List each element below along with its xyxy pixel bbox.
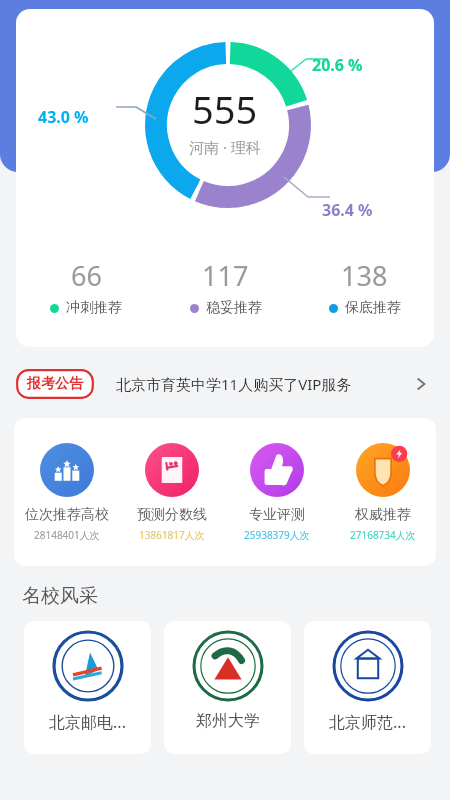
- staticText: 预测分数线: [137, 506, 207, 524]
- staticText: 13861817人次: [139, 528, 205, 542]
- staticText: 138: [341, 257, 388, 294]
- staticText: 北京邮电...: [49, 711, 126, 733]
- staticText: 名校风采: [22, 584, 98, 608]
- button[interactable]: 117: [156, 257, 295, 317]
- staticText: 117: [202, 257, 249, 294]
- staticText: 27168734人次: [350, 528, 416, 542]
- staticText: 河南 · 理科: [189, 137, 261, 157]
- staticText: 保底推荐: [345, 299, 401, 317]
- staticText: 北京师范...: [329, 711, 406, 733]
- staticText: 北京市育英中学11人购买了VIP服务: [116, 374, 408, 394]
- button[interactable]: 报考公告: [16, 362, 434, 406]
- staticText: 冲刺推荐: [66, 299, 122, 317]
- button[interactable]: 预测分数线: [119, 443, 224, 542]
- staticText: 权威推荐: [355, 506, 411, 524]
- staticText: 555: [192, 83, 258, 135]
- button[interactable]: 北京邮电...: [24, 621, 151, 754]
- staticText: 25938379人次: [244, 528, 310, 542]
- staticText: 专业评测: [249, 506, 305, 524]
- staticText: 郑州大学: [196, 711, 260, 731]
- button[interactable]: 郑州大学: [164, 621, 291, 754]
- staticText: 28148401人次: [34, 528, 100, 542]
- staticText: 报考公告: [27, 375, 83, 393]
- button[interactable]: 北京师范...: [304, 621, 431, 754]
- button[interactable]: 138: [295, 257, 434, 317]
- button[interactable]: 权威推荐: [330, 443, 436, 542]
- button[interactable]: 555: [16, 9, 434, 347]
- staticText: 20.6 %: [312, 54, 363, 76]
- button[interactable]: 位次推荐高校: [14, 443, 119, 542]
- staticText: 43.0 %: [38, 106, 89, 128]
- button[interactable]: 66: [16, 257, 156, 317]
- other: More: [408, 371, 434, 397]
- staticText: 36.4 %: [322, 199, 373, 221]
- staticText: 66: [71, 257, 102, 294]
- button[interactable]: 专业评测: [224, 443, 330, 542]
- staticText: 稳妥推荐: [206, 299, 262, 317]
- staticText: 位次推荐高校: [25, 506, 109, 524]
